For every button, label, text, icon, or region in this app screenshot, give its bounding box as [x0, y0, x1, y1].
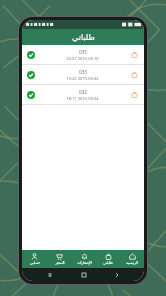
button[interactable]: طلباتي	[96, 250, 120, 268]
other: Completed	[27, 91, 35, 99]
staticText: 035	[79, 49, 87, 55]
button[interactable]: الإشعارات	[72, 250, 96, 268]
button[interactable]: Home	[78, 269, 89, 280]
other: Order status	[130, 70, 139, 79]
other: Order status	[130, 90, 139, 99]
other: Completed	[27, 51, 35, 59]
staticText: الرئيسية	[126, 261, 138, 265]
staticText: 22:57 2019-09-10	[66, 56, 99, 61]
staticText: المتجر	[55, 261, 65, 265]
staticText: طلباتي	[72, 33, 95, 42]
staticText: 033	[79, 69, 87, 75]
staticText: 032	[79, 89, 87, 95]
button[interactable]: Completed	[22, 85, 144, 105]
other: Order status	[130, 50, 139, 59]
button[interactable]: حسابي	[22, 250, 47, 268]
button[interactable]: Back	[111, 269, 122, 280]
staticText: الإشعارات	[77, 261, 92, 265]
other: Completed	[27, 71, 35, 79]
staticText: 18:11 2019-09-04	[66, 96, 99, 101]
staticText: طلباتي	[103, 261, 113, 265]
button[interactable]: Recents	[44, 269, 55, 280]
button[interactable]: Completed	[22, 65, 144, 85]
button[interactable]: Completed	[22, 45, 144, 65]
staticText: 19:22 2019-09-04	[66, 76, 99, 81]
button[interactable]: المتجر	[47, 250, 72, 268]
staticText: حسابي	[30, 261, 40, 265]
button[interactable]: الرئيسية	[120, 250, 144, 268]
